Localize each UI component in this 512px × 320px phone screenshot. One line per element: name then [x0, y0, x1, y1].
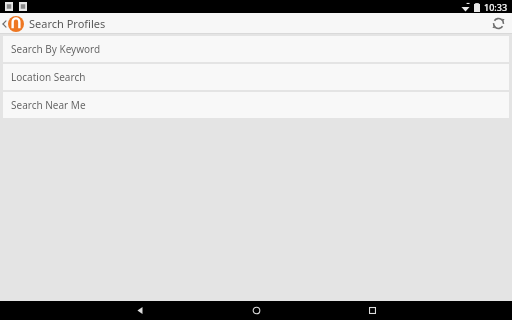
staticText: Search Profiles: [29, 16, 106, 31]
button[interactable]: Home: [241, 301, 271, 320]
staticText: Location Search: [11, 70, 86, 84]
button[interactable]: Navigate up: [0, 13, 24, 34]
button[interactable]: Search Near Me: [3, 92, 509, 118]
staticText: Search By Keyword: [11, 42, 101, 56]
button[interactable]: Recent apps: [357, 301, 387, 320]
button[interactable]: Refresh: [484, 13, 512, 34]
button[interactable]: Back: [125, 301, 155, 320]
button[interactable]: Location Search: [3, 64, 509, 90]
staticText: 10:33: [484, 1, 508, 13]
button[interactable]: Search By Keyword: [3, 36, 509, 62]
staticText: Search Near Me: [11, 98, 86, 112]
